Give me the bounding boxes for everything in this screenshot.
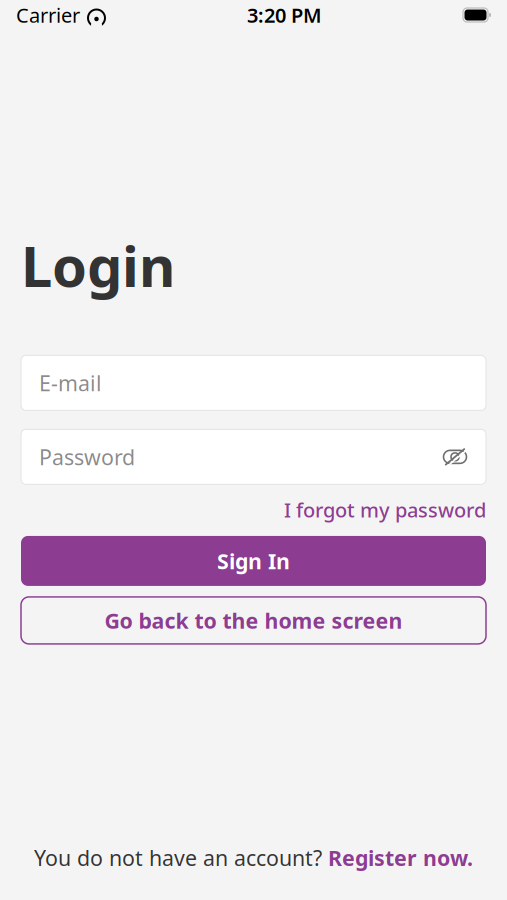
button[interactable]: You do not have an account?	[34, 844, 473, 872]
staticText: 3:20 PM	[247, 2, 322, 28]
staticText: Login	[21, 228, 175, 302]
staticText: I forgot my password	[284, 496, 486, 523]
staticText: Go back to the home screen	[104, 606, 402, 635]
staticText: Password	[39, 443, 135, 471]
staticText: E-mail	[39, 369, 102, 397]
staticText: Sign In	[217, 547, 290, 575]
button[interactable]: Sign In	[21, 536, 486, 586]
staticText: Carrier	[16, 2, 80, 28]
button[interactable]: Show password	[438, 440, 472, 474]
button[interactable]: Go back to the home screen	[21, 597, 486, 644]
staticText: Register now.	[328, 844, 473, 872]
staticText: You do not have an account?	[34, 844, 328, 872]
button[interactable]: I forgot my password	[284, 496, 486, 523]
